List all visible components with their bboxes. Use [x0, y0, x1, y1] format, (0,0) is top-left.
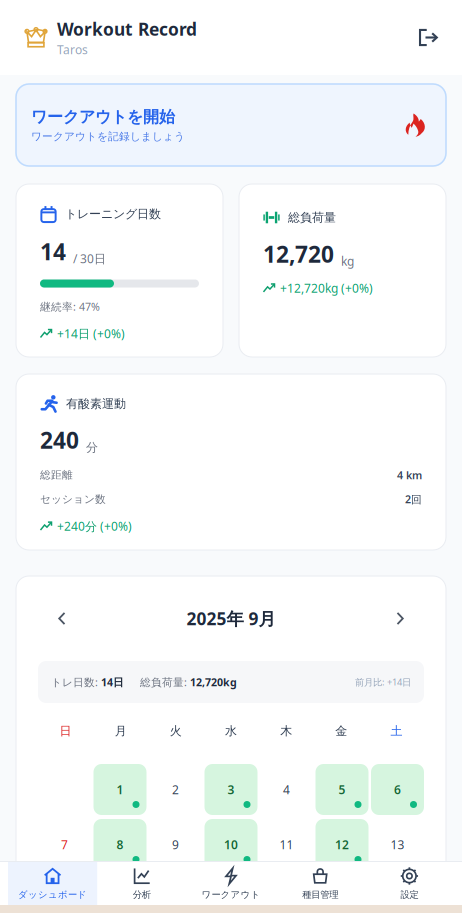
staticText: ワークアウトを記録しましょう	[31, 130, 185, 143]
button[interactable]: 設定	[365, 861, 454, 905]
staticText: 総負荷量:	[140, 675, 190, 689]
staticText: 4	[283, 781, 290, 797]
button[interactable]: 分析	[97, 861, 186, 905]
button[interactable]: ダッシュボード	[8, 861, 97, 905]
staticText: 3	[227, 781, 234, 797]
staticText: 14日	[101, 675, 124, 689]
staticText: 継続率: 47%	[40, 299, 100, 314]
staticText: 5	[338, 781, 345, 797]
staticText: +14日 (+0%)	[57, 326, 125, 342]
staticText: +12,720kg (+0%)	[280, 280, 373, 296]
staticText: 12	[335, 836, 349, 852]
staticText: kg	[341, 253, 354, 269]
staticText: ダッシュボード	[18, 889, 87, 900]
staticText: 12,720	[263, 239, 334, 269]
staticText: 10	[224, 836, 238, 852]
staticText: ワークアウトを開始	[31, 107, 175, 127]
staticText: セッション数	[40, 493, 106, 506]
staticText: 日	[60, 724, 72, 738]
staticText: Taros	[57, 41, 88, 57]
staticText: 12,720kg	[190, 675, 237, 689]
staticText: 水	[225, 724, 237, 738]
staticText: 分析	[133, 889, 151, 900]
staticText: 7	[61, 836, 68, 852]
button[interactable]: ワークアウト	[186, 861, 276, 905]
staticText: 土	[390, 724, 402, 738]
staticText: 2	[172, 781, 179, 797]
staticText: 分	[86, 440, 98, 455]
staticText: 240	[40, 425, 79, 455]
staticText: 前月比: +14日	[355, 676, 411, 688]
staticText: 金	[335, 724, 347, 738]
staticText: 4 km	[397, 468, 422, 482]
button[interactable]: Next month	[382, 600, 418, 636]
staticText: 8	[116, 836, 123, 852]
staticText: / 30日	[73, 251, 106, 266]
staticText: 設定	[400, 889, 418, 900]
staticText: 11	[279, 836, 293, 852]
staticText: 月	[115, 724, 127, 738]
staticText: 総距離	[40, 468, 73, 481]
staticText: 1	[116, 781, 123, 797]
staticText: 2025年 9月	[186, 607, 275, 630]
button[interactable]: 種目管理	[276, 861, 365, 905]
staticText: Workout Record	[57, 17, 197, 40]
staticText: 種目管理	[302, 889, 338, 900]
staticText: 木	[280, 724, 292, 738]
staticText: 13	[390, 836, 404, 852]
staticText: 2回	[405, 492, 422, 506]
staticText: 総負荷量	[288, 210, 336, 225]
staticText: 火	[170, 724, 182, 738]
staticText: +240分 (+0%)	[57, 518, 132, 534]
staticText: 有酸素運動	[66, 396, 126, 411]
staticText: ワークアウト	[201, 889, 260, 900]
staticText: 9	[172, 836, 179, 852]
button[interactable]: Sign out	[408, 15, 448, 59]
button[interactable]: ワークアウトを開始	[16, 84, 446, 166]
button[interactable]: Previous month	[44, 600, 80, 636]
staticText: トレーニング日数	[65, 206, 161, 221]
staticText: トレ日数:	[51, 675, 101, 689]
staticText: 14	[40, 236, 66, 266]
staticText: 6	[394, 781, 401, 797]
